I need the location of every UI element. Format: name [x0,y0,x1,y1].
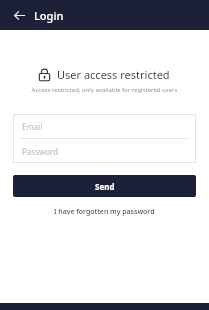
button[interactable]: Send [13,175,196,197]
staticText: Send [95,181,115,192]
staticText: Access restricted, only available for re… [0,86,209,94]
button[interactable]: Password [13,139,196,163]
button[interactable]: I have forgotten my password [0,204,209,220]
staticText: Email [22,121,43,132]
button[interactable]: Email [13,114,196,138]
button[interactable]: Back [10,6,28,24]
staticText: User access restricted [57,67,170,82]
staticText: Password [22,146,59,157]
staticText: Login [34,8,64,23]
staticText: I have forgotten my password [54,207,155,217]
